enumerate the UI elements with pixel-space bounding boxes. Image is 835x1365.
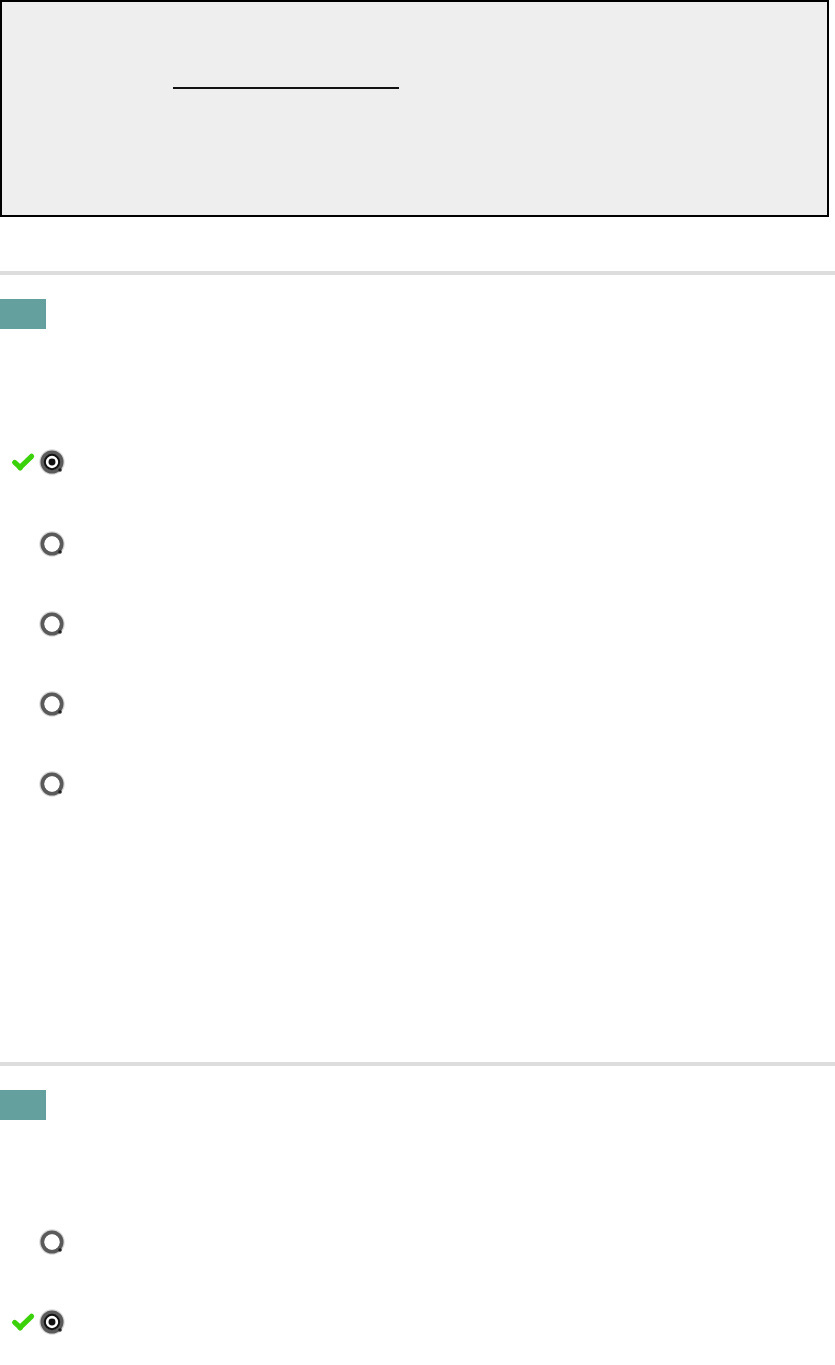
other: Correct bbox=[12, 451, 34, 473]
button[interactable]: Option bbox=[0, 610, 835, 638]
other: Correct bbox=[12, 1311, 34, 1333]
button[interactable]: Selected option bbox=[40, 450, 64, 474]
button[interactable]: Correct bbox=[0, 448, 835, 476]
button[interactable]: Option bbox=[0, 770, 835, 798]
button[interactable]: Selected option bbox=[40, 1310, 64, 1334]
button[interactable]: Option bbox=[40, 692, 64, 716]
button[interactable]: Correct bbox=[0, 1308, 835, 1336]
button[interactable]: Option bbox=[0, 690, 835, 718]
button[interactable]: Option bbox=[40, 772, 64, 796]
button[interactable]: Option bbox=[40, 612, 64, 636]
button[interactable]: Option bbox=[40, 1230, 64, 1254]
button[interactable]: Option bbox=[40, 532, 64, 556]
button[interactable]: Option bbox=[0, 1228, 835, 1256]
button[interactable]: Option bbox=[0, 530, 835, 558]
